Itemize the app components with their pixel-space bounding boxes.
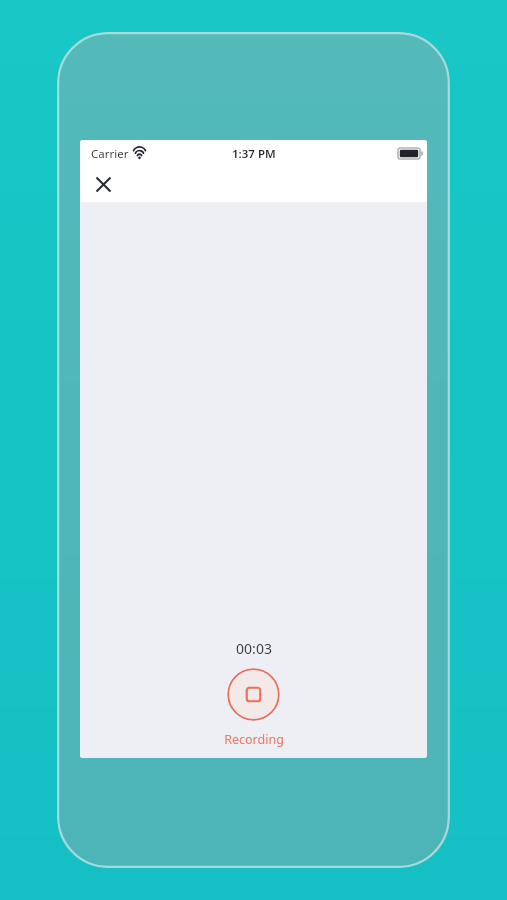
- staticText: 1:37 PM: [232, 146, 276, 162]
- staticText: 00:03: [236, 639, 272, 658]
- staticText: Carrier: [91, 146, 129, 162]
- button[interactable]: Stop recording: [227, 668, 280, 721]
- staticText: Recording: [224, 731, 284, 748]
- button[interactable]: Close: [90, 171, 117, 198]
